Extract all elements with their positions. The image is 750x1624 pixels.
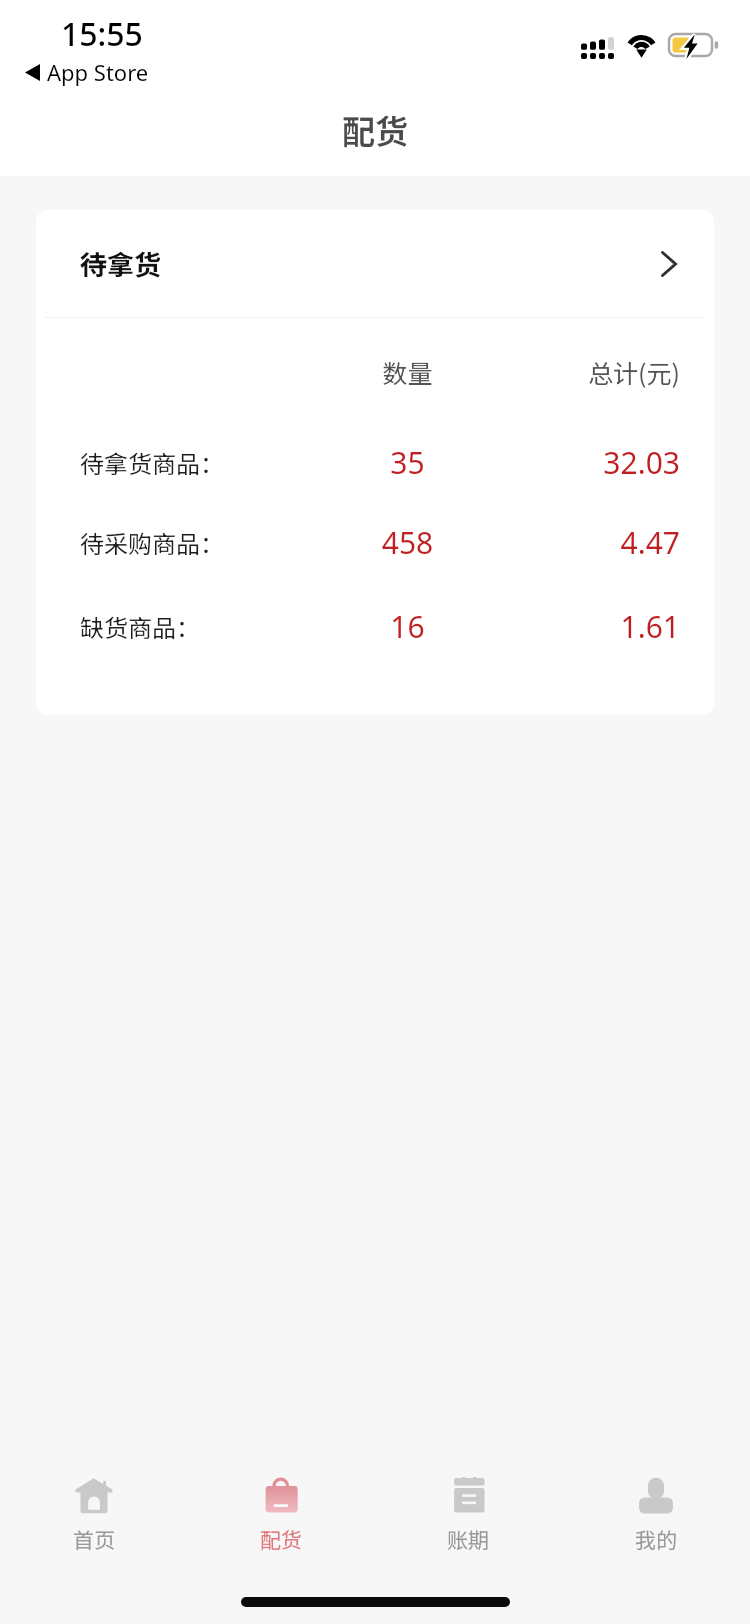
staticText: 配货 [342, 106, 408, 154]
button[interactable]: 账期 [374, 1477, 562, 1553]
staticText: 1.61 [480, 606, 680, 647]
button[interactable]: App Store [25, 57, 149, 87]
staticText: 16 [335, 606, 480, 647]
button[interactable]: 首页 [0, 1477, 187, 1553]
staticText: 待拿货商品： [80, 445, 224, 480]
staticText: 4.47 [480, 522, 680, 563]
staticText: 15:55 [61, 12, 143, 56]
staticText: 首页 [73, 1524, 115, 1553]
other: 查看待拿货 [661, 251, 677, 277]
button[interactable]: 我的 [562, 1477, 750, 1553]
staticText: 待拿货 [80, 244, 161, 283]
staticText: 待采购商品： [80, 525, 224, 560]
staticText: 35 [335, 442, 480, 483]
staticText: 数量 [335, 354, 480, 390]
button[interactable]: 待拿货 [36, 210, 714, 317]
staticText: 总计(元) [480, 354, 680, 390]
staticText: 配货 [260, 1524, 302, 1553]
staticText: 32.03 [480, 442, 680, 483]
button[interactable]: 配货 [187, 1477, 374, 1553]
staticText: 缺货商品： [80, 609, 200, 644]
staticText: 账期 [447, 1524, 489, 1553]
staticText: App Store [47, 57, 149, 87]
staticText: 我的 [635, 1524, 677, 1553]
staticText: 458 [335, 522, 480, 563]
